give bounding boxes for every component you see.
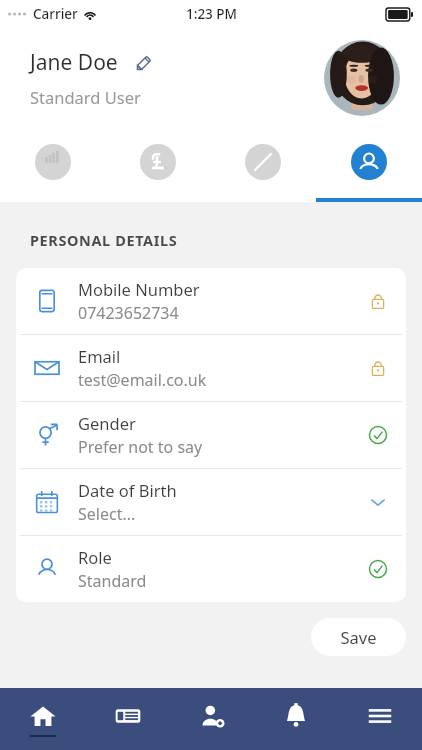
button[interactable]: Profile photo xyxy=(324,40,400,116)
button[interactable]: Date of Birth xyxy=(16,469,406,535)
staticText: Standard User xyxy=(30,86,141,108)
staticText: Date of Birth xyxy=(78,479,177,501)
button[interactable]: Locked xyxy=(350,268,406,334)
button[interactable]: Payments xyxy=(105,136,210,202)
button[interactable]: Offers xyxy=(210,136,316,202)
staticText: Email xyxy=(78,345,121,367)
button[interactable]: Dashboard xyxy=(0,136,105,202)
button[interactable]: Gender xyxy=(16,402,406,468)
staticText: Prefer not to say xyxy=(78,436,203,458)
button[interactable]: Edit name xyxy=(130,50,156,76)
button[interactable]: Statements xyxy=(85,688,170,750)
button[interactable]: Confirmed xyxy=(350,536,406,602)
staticText: 07423652734 xyxy=(78,302,179,324)
button[interactable]: Add contact xyxy=(170,688,254,750)
button[interactable]: Profile xyxy=(316,136,422,202)
staticText: Standard xyxy=(78,570,147,592)
staticText: Role xyxy=(78,546,112,568)
staticText: 1:23 PM xyxy=(186,5,237,23)
staticText: Select... xyxy=(78,503,136,525)
staticText: Carrier xyxy=(33,5,78,23)
button[interactable]: Home xyxy=(0,688,85,750)
button[interactable]: Save xyxy=(311,618,406,656)
staticText: test@email.co.uk xyxy=(78,369,207,391)
staticText: Jane Doe xyxy=(30,48,118,77)
button[interactable]: Email xyxy=(16,335,406,401)
button[interactable]: Notifications xyxy=(254,688,338,750)
staticText: Save xyxy=(340,626,377,648)
staticText: Gender xyxy=(78,412,136,434)
button[interactable]: Locked xyxy=(350,335,406,401)
staticText: Mobile Number xyxy=(78,278,200,300)
button[interactable]: Menu xyxy=(338,688,422,750)
button[interactable]: Mobile Number xyxy=(16,268,406,334)
button[interactable]: Confirmed xyxy=(350,402,406,468)
button[interactable]: Expand xyxy=(350,469,406,535)
staticText: PERSONAL DETAILS xyxy=(30,230,178,250)
button[interactable]: Role xyxy=(16,536,406,602)
